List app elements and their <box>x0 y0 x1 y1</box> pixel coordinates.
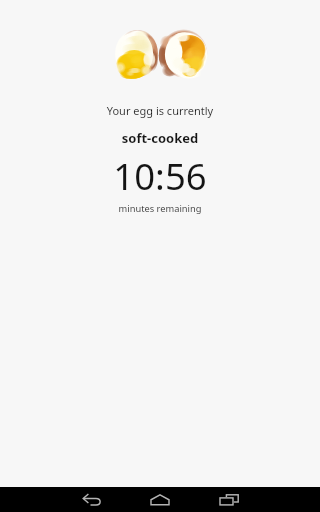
staticText: Your egg is currently <box>0 103 320 118</box>
button[interactable]: Recent apps <box>205 487 253 512</box>
staticText: soft-cooked <box>0 129 320 147</box>
button[interactable]: Back <box>68 487 116 512</box>
button[interactable]: Home <box>136 487 184 512</box>
staticText: 10:56 <box>0 151 320 201</box>
staticText: minutes remaining <box>0 202 320 215</box>
